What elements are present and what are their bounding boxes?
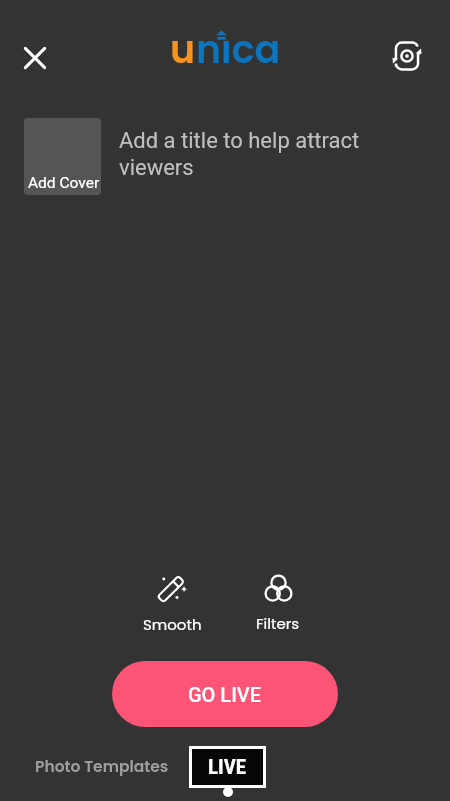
button[interactable]: GO LIVE [112, 661, 338, 727]
staticText: LIVE [208, 755, 247, 780]
button[interactable]: LIVE [189, 746, 266, 788]
button[interactable]: Add Cover [24, 118, 101, 195]
button[interactable]: Add a title to help attract viewers [119, 128, 377, 180]
button[interactable]: Filters [242, 574, 314, 646]
staticText: Smooth [143, 614, 202, 635]
button[interactable]: Smooth [136, 572, 208, 644]
button[interactable]: Photo Templates [35, 756, 169, 778]
button[interactable]: u [170, 23, 281, 76]
staticText: u [170, 23, 196, 76]
button[interactable]: Flip camera [385, 34, 429, 78]
staticText: nica [196, 23, 281, 76]
staticText: Add Cover [28, 174, 100, 192]
staticText: Filters [256, 613, 300, 634]
button[interactable]: Close [15, 38, 55, 78]
staticText: GO LIVE [188, 683, 262, 706]
